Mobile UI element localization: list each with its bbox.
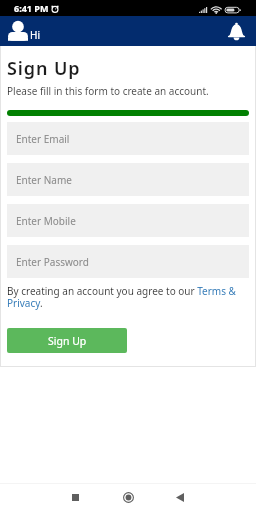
button[interactable]: Enter Email xyxy=(7,122,249,155)
staticText: 6:41 PM xyxy=(14,2,49,14)
staticText: Sign Up xyxy=(48,334,87,348)
staticText: Enter Mobile xyxy=(16,214,76,228)
staticText: Enter Password xyxy=(16,255,89,269)
button[interactable]: Enter Name xyxy=(7,163,249,196)
button[interactable]: Back xyxy=(162,483,198,512)
staticText: Hi xyxy=(30,28,40,42)
staticText: Enter Email xyxy=(16,132,70,146)
staticText: Sign Up xyxy=(7,56,81,81)
button[interactable]: Sign Up xyxy=(7,328,127,353)
staticText: By creating an account you agree to our … xyxy=(7,284,249,310)
button[interactable]: Recent apps xyxy=(57,483,93,512)
button[interactable]: Enter Password xyxy=(7,245,249,278)
staticText: Enter Name xyxy=(16,173,72,187)
button[interactable]: Hi xyxy=(8,21,40,41)
button[interactable]: Enter Mobile xyxy=(7,204,249,237)
staticText: Please fill in this form to create an ac… xyxy=(7,84,209,98)
button[interactable]: Notifications xyxy=(225,20,247,42)
button[interactable]: Home xyxy=(110,483,146,512)
